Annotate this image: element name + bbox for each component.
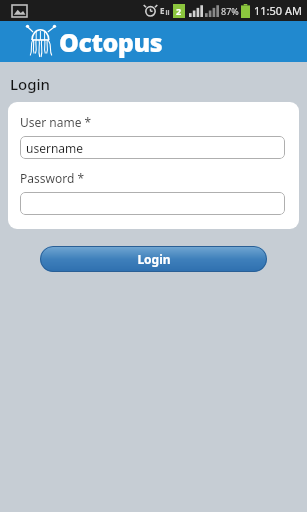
staticText: Octopus [59, 25, 163, 59]
staticText: 2 [176, 5, 182, 17]
button[interactable]: username [20, 136, 285, 159]
staticText: Login [10, 74, 50, 94]
staticText: Login [137, 251, 171, 267]
staticText: 87% [221, 5, 239, 17]
staticText: User name * [20, 114, 92, 130]
staticText: Password * [20, 170, 85, 186]
button[interactable] [20, 192, 285, 215]
button[interactable]: Login [40, 246, 267, 272]
staticText: 11:50 AM [254, 3, 302, 18]
staticText: username [26, 140, 84, 156]
staticText: E [160, 5, 165, 16]
